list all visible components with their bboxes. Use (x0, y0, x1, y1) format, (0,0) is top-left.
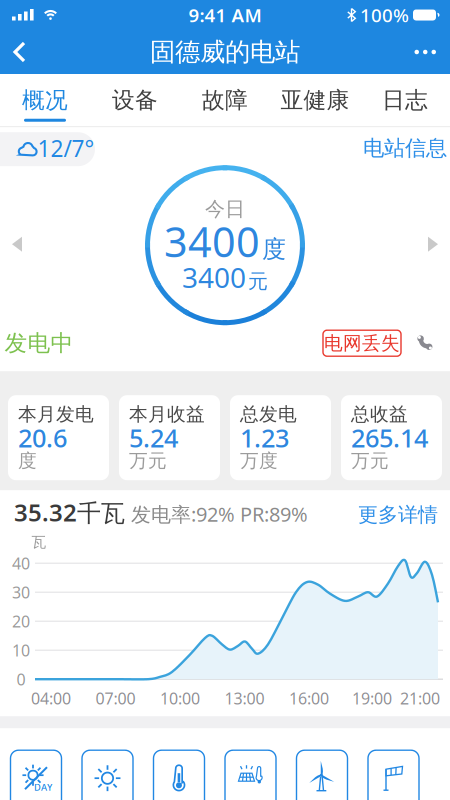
staticText: 40 (12, 553, 30, 574)
button[interactable]: 日志 (360, 74, 450, 127)
staticText: 3400 (182, 259, 246, 296)
button[interactable]: Panel temperature (225, 750, 276, 800)
staticText: 21:00 (400, 688, 440, 709)
staticText: 04:00 (31, 688, 71, 709)
staticText: 度 (262, 234, 286, 264)
staticText: 概况 (22, 86, 68, 114)
staticText: 265.14 (351, 421, 428, 454)
button[interactable]: 电网丢失 (323, 330, 401, 356)
staticText: 16:00 (289, 688, 329, 709)
button[interactable]: 故障 (180, 74, 270, 127)
staticText: 万度 (240, 449, 278, 472)
staticText: 100% (360, 3, 409, 27)
staticText: DAY (34, 781, 52, 793)
staticText: 本月收益 (129, 403, 205, 426)
staticText: 元 (248, 269, 268, 294)
staticText: 固德威的电站 (150, 36, 300, 67)
staticText: 万元 (129, 449, 167, 472)
staticText: 20 (12, 611, 30, 632)
button[interactable]: Temperature (153, 750, 204, 800)
button[interactable]: Call (414, 334, 433, 353)
staticText: 更多详情 (358, 503, 438, 527)
staticText: 10 (12, 640, 30, 661)
staticText: 07:00 (95, 688, 135, 709)
staticText: 9:41 AM (188, 3, 261, 27)
button[interactable]: 亚健康 (270, 74, 360, 127)
staticText: 故障 (202, 86, 248, 114)
staticText: 度 (18, 449, 37, 472)
staticText: 今日 (205, 197, 245, 221)
button[interactable]: Irradiance (82, 750, 133, 800)
staticText: 总收益 (351, 403, 408, 426)
staticText: 20.6 (18, 421, 67, 454)
staticText: 设备 (112, 86, 158, 114)
staticText: 35.32千瓦 (14, 496, 125, 528)
staticText: 本月发电 (18, 403, 94, 426)
staticText: 发电率:92% PR:89% (125, 501, 308, 527)
staticText: 万元 (351, 449, 389, 472)
staticText: 5.24 (129, 421, 178, 454)
staticText: 总发电 (240, 403, 297, 426)
staticText: 19:00 (352, 688, 392, 709)
button[interactable]: Wind turbine (296, 750, 347, 800)
button[interactable]: Previous (7, 232, 27, 256)
staticText: 3400 (164, 214, 260, 269)
button[interactable]: Day irradiation (10, 750, 61, 800)
button[interactable]: 设备 (90, 74, 180, 127)
staticText: 亚健康 (280, 86, 349, 114)
staticText: 电站信息 (363, 135, 447, 161)
staticText: 瓦 (31, 533, 46, 551)
staticText: 13:00 (224, 688, 264, 709)
button[interactable]: 电站信息 (363, 135, 447, 161)
button[interactable]: Wind (368, 750, 419, 800)
button[interactable]: Back (0, 42, 26, 62)
button[interactable]: More (414, 50, 450, 54)
staticText: 日志 (382, 86, 428, 114)
button[interactable]: Next (423, 232, 443, 256)
button[interactable]: 更多详情 (358, 503, 438, 527)
staticText: 10:00 (160, 688, 200, 709)
staticText: 1.23 (240, 421, 289, 454)
staticText: 12/7° (37, 133, 94, 163)
staticText: 30 (12, 582, 30, 603)
staticText: 发电中 (4, 329, 73, 357)
staticText: 电网丢失 (324, 332, 400, 355)
staticText: 0 (16, 669, 25, 690)
button[interactable]: 概况 (0, 74, 90, 127)
